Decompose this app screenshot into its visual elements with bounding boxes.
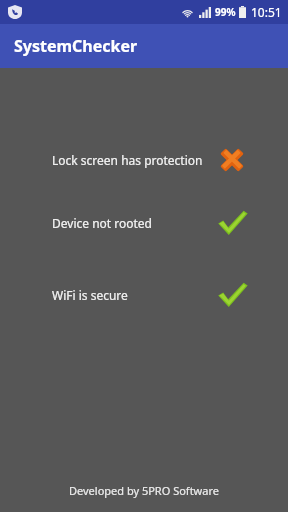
other: Check failed	[216, 144, 248, 176]
staticText: Developed by 5PRO Software	[69, 483, 219, 498]
staticText: SystemChecker	[14, 35, 138, 57]
other: Check passed	[216, 279, 248, 311]
button[interactable]: Lock screen has protection	[0, 144, 288, 176]
staticText: Lock screen has protection	[52, 152, 203, 168]
button[interactable]: WiFi is secure	[0, 279, 288, 311]
staticText: 99%	[215, 5, 236, 19]
staticText: 10:51	[251, 4, 282, 20]
other: Check passed	[216, 207, 248, 239]
staticText: Device not rooted	[52, 215, 152, 231]
staticText: WiFi is secure	[52, 287, 128, 303]
button[interactable]: Device not rooted	[0, 207, 288, 239]
